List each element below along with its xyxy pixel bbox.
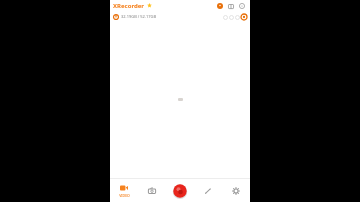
button[interactable]: Settings [222,179,250,202]
button[interactable]: Edit [194,179,222,202]
staticText: VIDEO [119,193,130,198]
button[interactable]: Screenshot [138,179,166,202]
button[interactable]: Rewards [225,0,236,11]
staticText: 32.19GB / 52.17GB [121,14,157,19]
button[interactable]: VIDEO [110,179,138,202]
staticText: XRecorder [113,2,145,10]
button[interactable]: Help [236,0,247,11]
button[interactable]: Notifications [214,0,225,11]
button[interactable]: Record [166,179,194,202]
